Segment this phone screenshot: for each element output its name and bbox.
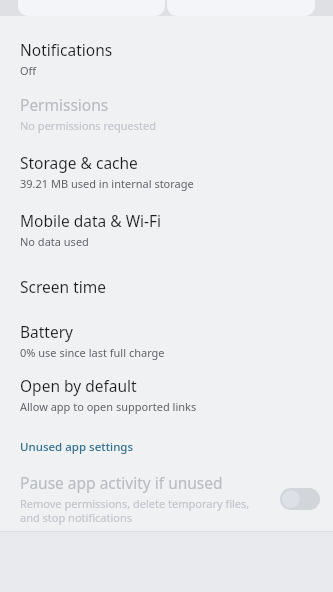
staticText: No data used	[20, 234, 89, 249]
staticText: Allow app to open supported links	[20, 399, 197, 414]
staticText: Storage & cache	[20, 152, 138, 173]
staticText: 39.21 MB used in internal storage	[20, 176, 194, 191]
staticText: Pause app activity if unused	[20, 472, 223, 493]
staticText: Off	[20, 63, 37, 78]
button[interactable]: Pause app activity if unused	[0, 468, 333, 530]
button[interactable]: Storage & cache	[0, 142, 333, 200]
staticText: Remove permissions, delete temporary fil…	[20, 496, 250, 526]
button[interactable]: Open by default	[0, 366, 333, 422]
staticText: Open by default	[20, 375, 137, 396]
staticText: Permissions	[20, 94, 109, 115]
button[interactable]: Notifications	[0, 32, 333, 84]
staticText: Battery	[20, 321, 74, 342]
staticText: Mobile data & Wi-Fi	[20, 210, 162, 231]
staticText: Screen time	[20, 276, 106, 297]
staticText: 0% use since last full charge	[20, 345, 165, 360]
staticText: No permissions requested	[20, 118, 156, 133]
button[interactable]: Mobile data & Wi-Fi	[0, 200, 333, 258]
staticText: Notifications	[20, 39, 113, 60]
button[interactable]: Permissions	[0, 84, 333, 142]
button[interactable]: Battery	[0, 314, 333, 366]
staticText: Unused app settings	[20, 439, 134, 455]
button[interactable]: Unused app settings	[0, 432, 333, 462]
button[interactable]: Pause app activity if unused toggle	[280, 488, 320, 510]
button[interactable]: Screen time	[0, 258, 333, 314]
